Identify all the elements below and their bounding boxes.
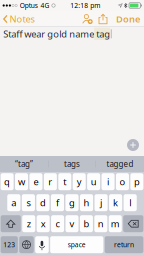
staticText: q bbox=[4, 175, 10, 188]
button[interactable]: a bbox=[7, 194, 20, 211]
button[interactable]: f bbox=[51, 194, 64, 211]
button[interactable]: l bbox=[124, 194, 137, 211]
button[interactable]: s bbox=[22, 194, 35, 211]
button[interactable]: t bbox=[58, 173, 71, 190]
button[interactable]: tagged bbox=[96, 156, 144, 171]
staticText: n bbox=[98, 217, 104, 230]
button[interactable]: 123 bbox=[1, 236, 18, 253]
button[interactable]: d bbox=[36, 194, 49, 211]
button[interactable]: Shift bbox=[1, 215, 21, 232]
button[interactable]: return bbox=[105, 236, 143, 253]
staticText: o bbox=[119, 175, 125, 188]
button[interactable]: Add People bbox=[79, 11, 95, 27]
staticText: k bbox=[113, 196, 118, 209]
staticText: r bbox=[48, 175, 52, 188]
staticText: u bbox=[91, 175, 97, 188]
staticText: space bbox=[68, 240, 86, 249]
staticText: a bbox=[11, 196, 16, 209]
staticText: d bbox=[40, 196, 46, 209]
button[interactable]: y bbox=[73, 173, 86, 190]
staticText: z bbox=[27, 217, 31, 230]
staticText: b bbox=[83, 217, 89, 230]
staticText: y bbox=[77, 175, 82, 188]
staticText: “tag” bbox=[15, 159, 33, 169]
staticText: f bbox=[56, 196, 59, 209]
button[interactable]: k bbox=[109, 194, 122, 211]
staticText: t bbox=[63, 175, 66, 188]
button[interactable]: Done bbox=[111, 11, 144, 27]
staticText: tagged bbox=[106, 159, 133, 169]
staticText: h bbox=[83, 196, 89, 209]
staticText: tag bbox=[94, 28, 110, 40]
button[interactable]: u bbox=[87, 173, 100, 190]
button[interactable]: p bbox=[130, 173, 143, 190]
button[interactable]: e bbox=[29, 173, 42, 190]
staticText: w bbox=[18, 175, 25, 188]
button[interactable]: Delete bbox=[123, 215, 143, 232]
button[interactable]: Share bbox=[95, 11, 111, 27]
button[interactable]: w bbox=[15, 173, 28, 190]
button[interactable]: Add attachment bbox=[125, 137, 141, 153]
staticText: 12:18 pm bbox=[70, 1, 100, 10]
staticText: 123 bbox=[3, 240, 15, 249]
button[interactable]: z bbox=[22, 215, 35, 232]
button[interactable]: g bbox=[65, 194, 78, 211]
staticText: p bbox=[134, 175, 140, 188]
staticText: tags bbox=[64, 159, 80, 169]
button[interactable]: j bbox=[94, 194, 108, 211]
staticText: Optus bbox=[20, 1, 38, 10]
button[interactable]: o bbox=[116, 173, 129, 190]
staticText: Notes bbox=[10, 13, 35, 25]
button[interactable]: Next keyboard bbox=[19, 236, 34, 253]
staticText: Staff wear gold name bbox=[3, 28, 94, 40]
button[interactable]: h bbox=[80, 194, 93, 211]
staticText: g bbox=[69, 196, 75, 209]
button[interactable]: m bbox=[109, 215, 122, 232]
button[interactable]: c bbox=[51, 215, 64, 232]
button[interactable]: v bbox=[65, 215, 78, 232]
staticText: i bbox=[107, 175, 109, 188]
button[interactable]: space bbox=[50, 236, 103, 253]
button[interactable]: n bbox=[94, 215, 107, 232]
staticText: l bbox=[129, 196, 131, 209]
button[interactable]: r bbox=[44, 173, 57, 190]
staticText: c bbox=[56, 217, 60, 230]
staticText: Done bbox=[116, 13, 140, 25]
staticText: s bbox=[26, 196, 30, 209]
button[interactable]: tags bbox=[48, 156, 96, 171]
button[interactable]: x bbox=[37, 215, 50, 232]
button[interactable]: b bbox=[80, 215, 93, 232]
button[interactable]: Notes bbox=[0, 11, 39, 27]
staticText: e bbox=[33, 175, 38, 188]
staticText: v bbox=[69, 217, 74, 230]
button[interactable]: Dictate bbox=[35, 236, 49, 253]
staticText: return bbox=[114, 240, 134, 249]
staticText: m bbox=[111, 217, 120, 230]
button[interactable]: “tag” bbox=[0, 156, 48, 171]
button[interactable]: i bbox=[101, 173, 114, 190]
staticText: 4G bbox=[40, 1, 49, 10]
button[interactable]: q bbox=[1, 173, 14, 190]
staticText: x bbox=[41, 217, 46, 230]
staticText: j bbox=[100, 196, 102, 209]
